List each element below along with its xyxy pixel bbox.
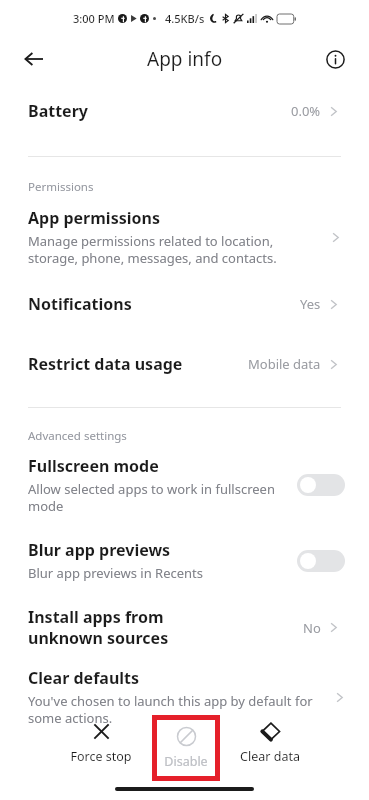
staticText: Blur app previews [28,539,171,561]
button[interactable]: Disable [164,726,208,770]
staticText: Mobile data [248,355,321,373]
button[interactable]: Blur app previews [0,539,369,582]
staticText: Clear defaults [28,667,140,689]
staticText: Allow selected apps to work in fullscree… [28,480,287,515]
staticText: Notifications [28,293,132,315]
button[interactable]: Back [14,39,54,79]
staticText: Install apps from unknown sources [28,606,198,649]
staticText: Yes [300,295,321,313]
button[interactable]: Battery [0,94,369,128]
staticText: Blur app previews in Recents [28,564,203,582]
button[interactable]: Clear defaults [0,667,369,727]
staticText: Advanced settings [28,428,127,444]
staticText: Clear data [240,748,300,765]
staticText: Permissions [28,179,94,195]
staticText: 4.5KB/s [165,11,205,26]
button[interactable]: App details [315,39,355,79]
button[interactable]: App permissions [0,207,369,267]
button[interactable]: Clear data [234,715,306,771]
button[interactable]: Notifications [0,289,369,319]
button[interactable]: Restrict data usage [0,349,369,379]
button[interactable]: Install apps from unknown sources [0,606,369,649]
staticText: App info [147,46,223,72]
button[interactable]: Fullscreen mode [0,455,369,515]
staticText: Restrict data usage [28,353,183,375]
button[interactable]: Toggle off [297,474,345,496]
staticText: Force stop [70,748,132,765]
staticText: Disable [164,753,208,770]
staticText: 0.0% [291,102,321,120]
button[interactable]: Force stop [64,715,138,771]
staticText: Fullscreen mode [28,455,159,477]
staticText: Battery [28,100,88,122]
button[interactable]: Toggle off [297,550,345,572]
staticText: App permissions [28,207,160,229]
staticText: You've chosen to launch this app by defa… [28,692,328,727]
staticText: Manage permissions related to location, … [28,232,320,267]
staticText: No [303,619,321,637]
staticText: 3:00 PM [73,11,115,26]
